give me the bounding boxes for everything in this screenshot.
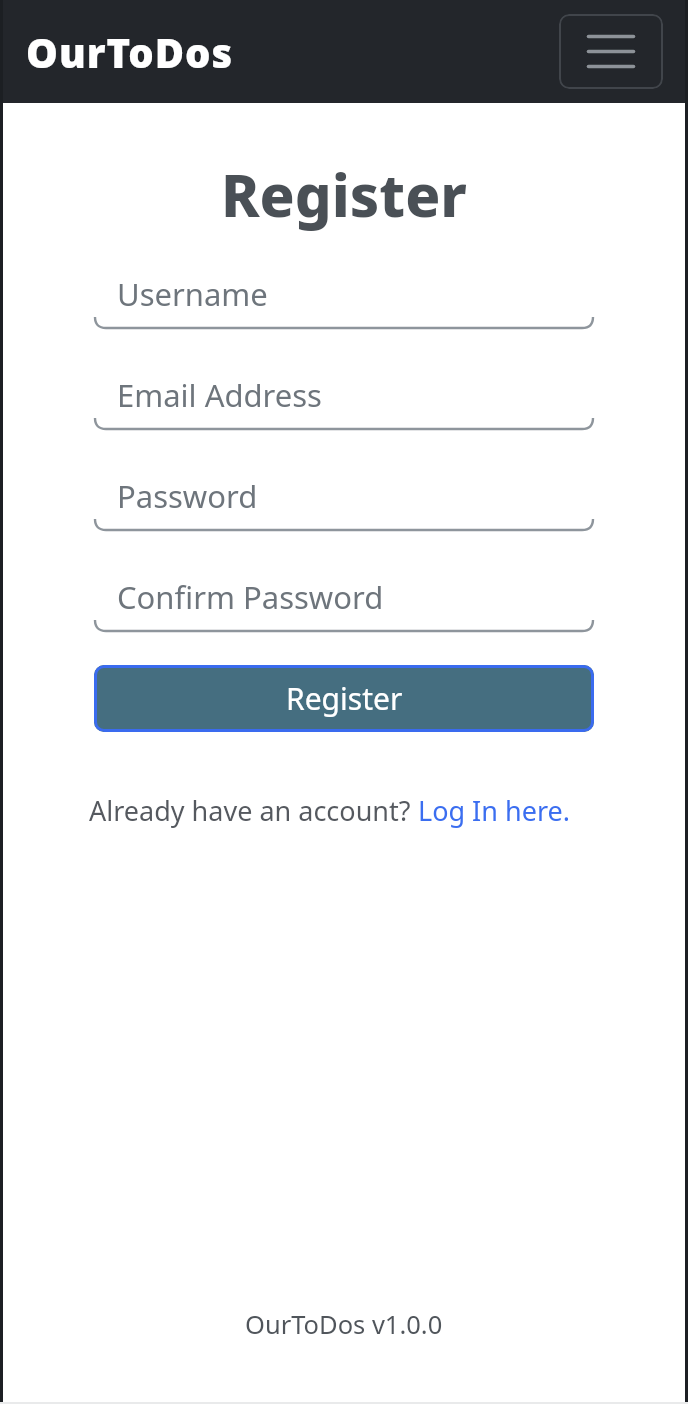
staticText: OurToDos v1.0.0 <box>245 1307 443 1342</box>
staticText: Password <box>117 475 258 517</box>
button[interactable] <box>559 14 663 89</box>
staticText: Username <box>117 273 268 315</box>
button[interactable]: Log In here. <box>418 792 570 829</box>
staticText: Confirm Password <box>117 576 384 618</box>
staticText: Email Address <box>117 374 322 416</box>
button[interactable]: Register <box>94 665 594 732</box>
staticText: Register <box>221 155 467 234</box>
staticText: Already have an account? <box>89 792 418 829</box>
staticText: OurToDos <box>26 25 234 79</box>
staticText: Register <box>286 678 403 719</box>
